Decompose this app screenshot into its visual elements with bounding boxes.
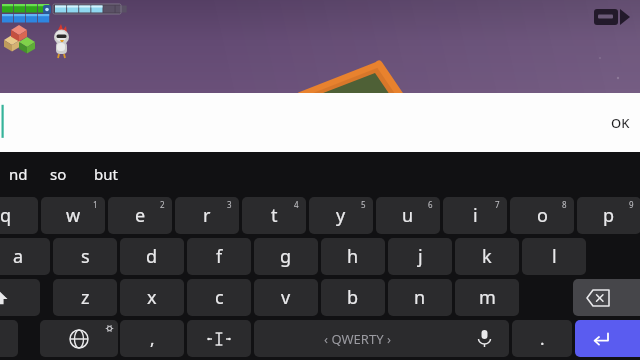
staticText: nd: [9, 164, 28, 184]
staticText: OK: [611, 114, 630, 132]
staticText: 1: [93, 199, 98, 210]
button[interactable]: ,: [120, 320, 184, 357]
button[interactable]: Backspace: [573, 279, 640, 316]
staticText: k: [482, 244, 492, 269]
staticText: ,: [150, 327, 155, 350]
staticText: r: [203, 203, 211, 228]
button[interactable]: Shift: [0, 279, 40, 316]
button[interactable]: nd: [0, 152, 36, 195]
button[interactable]: x: [120, 279, 184, 316]
button[interactable]: Text editing: [187, 320, 251, 357]
staticText: q: [0, 203, 12, 228]
button[interactable]: u: [376, 197, 440, 234]
button[interactable]: o: [510, 197, 574, 234]
button[interactable]: f: [187, 238, 251, 275]
staticText: 5: [361, 199, 366, 210]
staticText: 9: [629, 199, 634, 210]
button[interactable]: .: [512, 320, 572, 357]
button[interactable]: d: [120, 238, 184, 275]
staticText: o: [537, 203, 548, 228]
staticText: 8: [562, 199, 567, 210]
button[interactable]: n: [388, 279, 452, 316]
button[interactable]: j: [388, 238, 452, 275]
staticText: t: [271, 203, 278, 228]
staticText: s: [81, 244, 90, 269]
button[interactable]: i: [443, 197, 507, 234]
staticText: 6: [428, 199, 433, 210]
button[interactable]: s: [53, 238, 117, 275]
staticText: so: [50, 164, 67, 184]
staticText: but: [94, 164, 118, 184]
button[interactable]: h: [321, 238, 385, 275]
button[interactable]: OK: [611, 101, 630, 145]
button[interactable]: c: [187, 279, 251, 316]
staticText: a: [13, 244, 24, 269]
staticText: g: [280, 244, 292, 269]
button[interactable]: Record video: [590, 6, 634, 28]
button[interactable]: k: [455, 238, 519, 275]
staticText: d: [146, 244, 158, 269]
staticText: h: [347, 244, 359, 269]
staticText: 3: [227, 199, 232, 210]
button[interactable]: m: [455, 279, 519, 316]
button[interactable]: t: [242, 197, 306, 234]
staticText: 2: [160, 199, 165, 210]
button[interactable]: e: [108, 197, 172, 234]
staticText: c: [215, 285, 224, 310]
button[interactable]: b: [321, 279, 385, 316]
button[interactable]: Enter: [575, 320, 640, 357]
staticText: z: [81, 285, 90, 310]
staticText: v: [281, 285, 291, 310]
button[interactable]: q: [0, 197, 38, 234]
staticText: n: [414, 285, 426, 310]
staticText: j: [418, 244, 423, 269]
staticText: 4: [294, 199, 299, 210]
button[interactable]: a: [0, 238, 50, 275]
button[interactable]: g: [254, 238, 318, 275]
button[interactable]: Symbols: [0, 320, 18, 357]
staticText: b: [347, 285, 359, 310]
staticText: ‹ QWERTY ›: [324, 330, 391, 348]
button[interactable]: w: [41, 197, 105, 234]
button[interactable]: r: [175, 197, 239, 234]
button[interactable]: Change language: [40, 320, 118, 357]
button[interactable]: p: [577, 197, 640, 234]
staticText: p: [603, 203, 615, 228]
button[interactable]: y: [309, 197, 373, 234]
staticText: .: [540, 327, 545, 350]
button[interactable]: l: [522, 238, 586, 275]
staticText: y: [336, 203, 346, 228]
staticText: m: [479, 285, 496, 310]
button[interactable]: so: [36, 152, 80, 195]
staticText: x: [147, 285, 157, 310]
staticText: l: [552, 244, 557, 269]
staticText: e: [135, 203, 146, 228]
staticText: i: [473, 203, 478, 228]
staticText: f: [216, 244, 223, 269]
button[interactable]: ‹ QWERTY ›: [254, 320, 509, 357]
button[interactable]: but: [80, 152, 132, 195]
staticText: w: [66, 203, 81, 228]
staticText: 7: [495, 199, 500, 210]
button[interactable]: OK: [0, 93, 640, 152]
button[interactable]: v: [254, 279, 318, 316]
staticText: u: [402, 203, 414, 228]
button[interactable]: z: [53, 279, 117, 316]
